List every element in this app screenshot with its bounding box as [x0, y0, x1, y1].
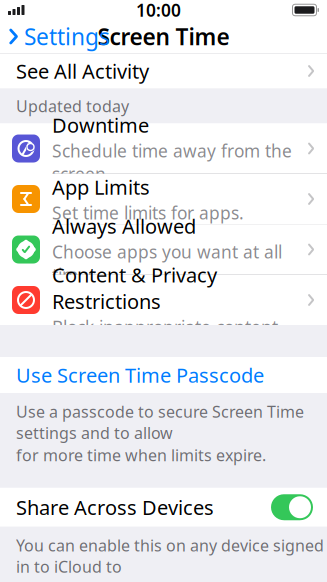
staticText: Use Screen Time Passcode	[16, 362, 264, 388]
staticText: Set time limits for apps.	[52, 201, 244, 224]
staticText: Use a passcode to secure Screen Time set…	[16, 401, 304, 443]
button[interactable]: Settings	[0, 15, 110, 57]
staticText: Screen Time	[97, 21, 229, 51]
staticText: for more time when limits expire.	[16, 444, 266, 466]
staticText: See All Activity	[16, 58, 149, 84]
staticText: Share Across Devices	[16, 494, 214, 521]
staticText: Always Allowed	[52, 213, 196, 239]
staticText: App Limits	[52, 174, 150, 200]
staticText: Downtime	[52, 112, 149, 138]
button[interactable]: Always Allowed	[0, 224, 327, 274]
button[interactable]: Share Across Devices	[0, 488, 327, 527]
button[interactable]: Use Screen Time Passcode	[0, 357, 327, 393]
staticText: 10:00	[136, 0, 181, 21]
staticText: Schedule time away from the screen.	[52, 139, 292, 185]
staticText: Settings	[24, 21, 110, 51]
staticText: Updated today	[16, 95, 129, 117]
button[interactable]: See All Activity	[0, 53, 327, 88]
staticText: Content & Privacy Restrictions	[52, 261, 217, 314]
staticText: Block inappropriate content.	[52, 316, 283, 339]
staticText: Choose apps you want at all times.	[52, 240, 282, 286]
button[interactable]: Content & Privacy Restrictions	[0, 275, 327, 325]
button[interactable]: Downtime	[0, 123, 327, 173]
button[interactable]: App Limits	[0, 174, 327, 224]
staticText: You can enable this on any device signed…	[16, 535, 324, 577]
